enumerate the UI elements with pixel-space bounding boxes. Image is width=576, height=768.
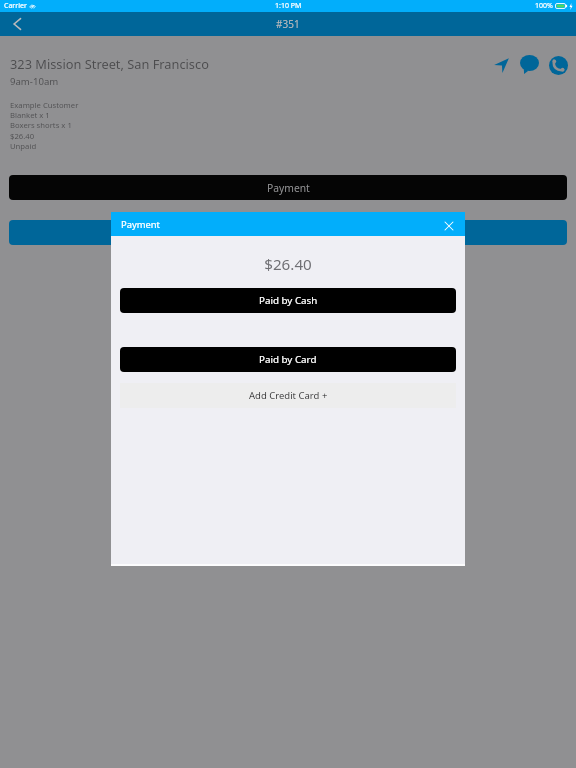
staticText: $26.40 xyxy=(10,131,35,141)
button[interactable]: Paid by Cash xyxy=(120,288,456,313)
button[interactable]: Navigate xyxy=(494,58,509,73)
button[interactable]: Message xyxy=(520,55,539,74)
staticText: Unpaid xyxy=(10,141,37,151)
staticText: Example Customer xyxy=(10,100,79,110)
staticText: Blanket x 1 xyxy=(10,110,50,120)
button[interactable]: Back xyxy=(9,16,25,32)
button[interactable]: Close dialog xyxy=(440,217,458,235)
staticText: Boxers shorts x 1 xyxy=(10,120,72,130)
staticText: Complete xyxy=(265,226,312,240)
staticText: 1:10 PM xyxy=(275,1,302,11)
button[interactable]: Call xyxy=(549,56,568,75)
staticText: 9am-10am xyxy=(10,75,59,88)
staticText: 323 Mission Street, San Francisco xyxy=(10,55,209,72)
staticText: Add Credit Card + xyxy=(249,389,328,402)
staticText: Carrier xyxy=(4,1,27,11)
button[interactable]: Complete xyxy=(9,220,567,245)
button[interactable]: Add Credit Card + xyxy=(120,383,456,408)
staticText: Paid by Card xyxy=(259,353,317,366)
button[interactable]: Payment xyxy=(9,175,567,200)
staticText: 100% xyxy=(535,1,553,11)
staticText: #351 xyxy=(276,17,300,31)
staticText: Payment xyxy=(121,218,161,231)
staticText: Payment xyxy=(267,181,310,195)
staticText: Paid by Cash xyxy=(259,294,318,307)
button[interactable]: Paid by Card xyxy=(120,347,456,372)
staticText: $26.40 xyxy=(111,254,465,275)
